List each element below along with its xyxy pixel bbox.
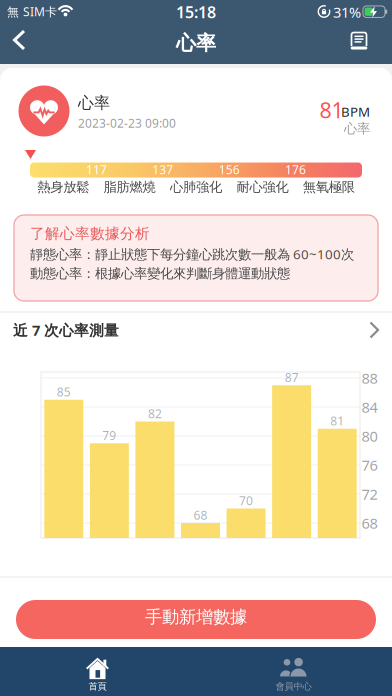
- staticText: 84: [361, 397, 377, 417]
- staticText: 靜態心率：靜止狀態下每分鐘心跳次數一般為 60~100次: [30, 245, 354, 263]
- staticText: 87: [285, 369, 299, 385]
- staticText: 85: [57, 384, 71, 400]
- button[interactable]: Back: [0, 24, 40, 64]
- staticText: 81: [330, 413, 344, 429]
- staticText: 81: [319, 96, 343, 124]
- staticText: 動態心率：根據心率變化來判斷身體運動狀態: [30, 265, 290, 282]
- staticText: 82: [148, 405, 162, 421]
- staticText: 88: [361, 368, 377, 388]
- staticText: 熱身放鬆: [37, 179, 89, 195]
- staticText: 156: [219, 161, 240, 177]
- staticText: 心率: [176, 31, 216, 55]
- staticText: 72: [361, 484, 377, 504]
- staticText: 心率: [78, 93, 110, 113]
- staticText: 心率: [344, 120, 370, 137]
- staticText: 68: [361, 513, 377, 533]
- staticText: 79: [102, 427, 116, 443]
- staticText: 手動新增數據: [145, 606, 247, 628]
- staticText: 無 SIM卡: [7, 3, 57, 19]
- button[interactable]: 手動新增數據: [16, 600, 376, 639]
- button[interactable]: 近 7 次心率測量: [0, 312, 392, 347]
- staticText: 31%: [333, 2, 361, 22]
- staticText: 耐心強化: [236, 179, 288, 195]
- button[interactable]: 首頁: [0, 647, 196, 696]
- staticText: 脂肪燃燒: [104, 179, 156, 195]
- staticText: 68: [193, 507, 207, 523]
- staticText: BPM: [341, 103, 370, 120]
- button[interactable]: History records: [338, 24, 382, 64]
- staticText: 70: [239, 492, 253, 508]
- staticText: 心肺強化: [170, 179, 222, 195]
- staticText: 2023-02-23 09:00: [78, 115, 176, 131]
- staticText: 了解心率數據分析: [30, 224, 150, 242]
- staticText: 76: [361, 455, 377, 475]
- staticText: 80: [361, 426, 377, 446]
- staticText: 首頁: [88, 681, 106, 692]
- staticText: 15:18: [176, 1, 216, 23]
- staticText: 會員中心: [275, 681, 311, 692]
- staticText: 137: [152, 161, 173, 177]
- staticText: 176: [285, 161, 306, 177]
- staticText: 117: [86, 161, 107, 177]
- staticText: 近 7 次心率測量: [13, 320, 119, 340]
- staticText: 無氧極限: [303, 179, 355, 195]
- button[interactable]: 會員中心: [196, 647, 392, 696]
